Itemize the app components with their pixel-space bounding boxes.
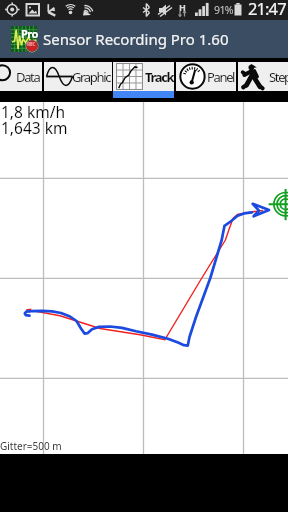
staticText: H bbox=[179, 1, 186, 13]
staticText: Graphic bbox=[72, 68, 111, 86]
button[interactable]: Graphic bbox=[44, 62, 112, 98]
staticText: Gitter=500 m bbox=[0, 439, 62, 453]
staticText: Panel bbox=[207, 68, 235, 86]
staticText: 1,643 km bbox=[1, 117, 68, 138]
staticText: Pro bbox=[21, 26, 38, 41]
staticText: 1,8 km/h bbox=[1, 101, 66, 122]
staticText: Step bbox=[269, 68, 288, 86]
button[interactable]: Panel bbox=[176, 62, 236, 98]
staticText: Data bbox=[16, 68, 40, 86]
staticText: 21:47 bbox=[248, 0, 286, 17]
button[interactable]: 1,8 km/h bbox=[0, 102, 288, 454]
button[interactable]: Step bbox=[238, 62, 288, 98]
button[interactable]: Data bbox=[0, 62, 42, 98]
staticText: REC bbox=[27, 41, 36, 47]
button[interactable]: Pro bbox=[0, 20, 288, 58]
staticText: 91% bbox=[214, 3, 233, 17]
button[interactable]: Track bbox=[113, 62, 174, 98]
staticText: Sensor Recording Pro 1.60 bbox=[43, 29, 229, 49]
staticText: Track bbox=[145, 68, 174, 86]
